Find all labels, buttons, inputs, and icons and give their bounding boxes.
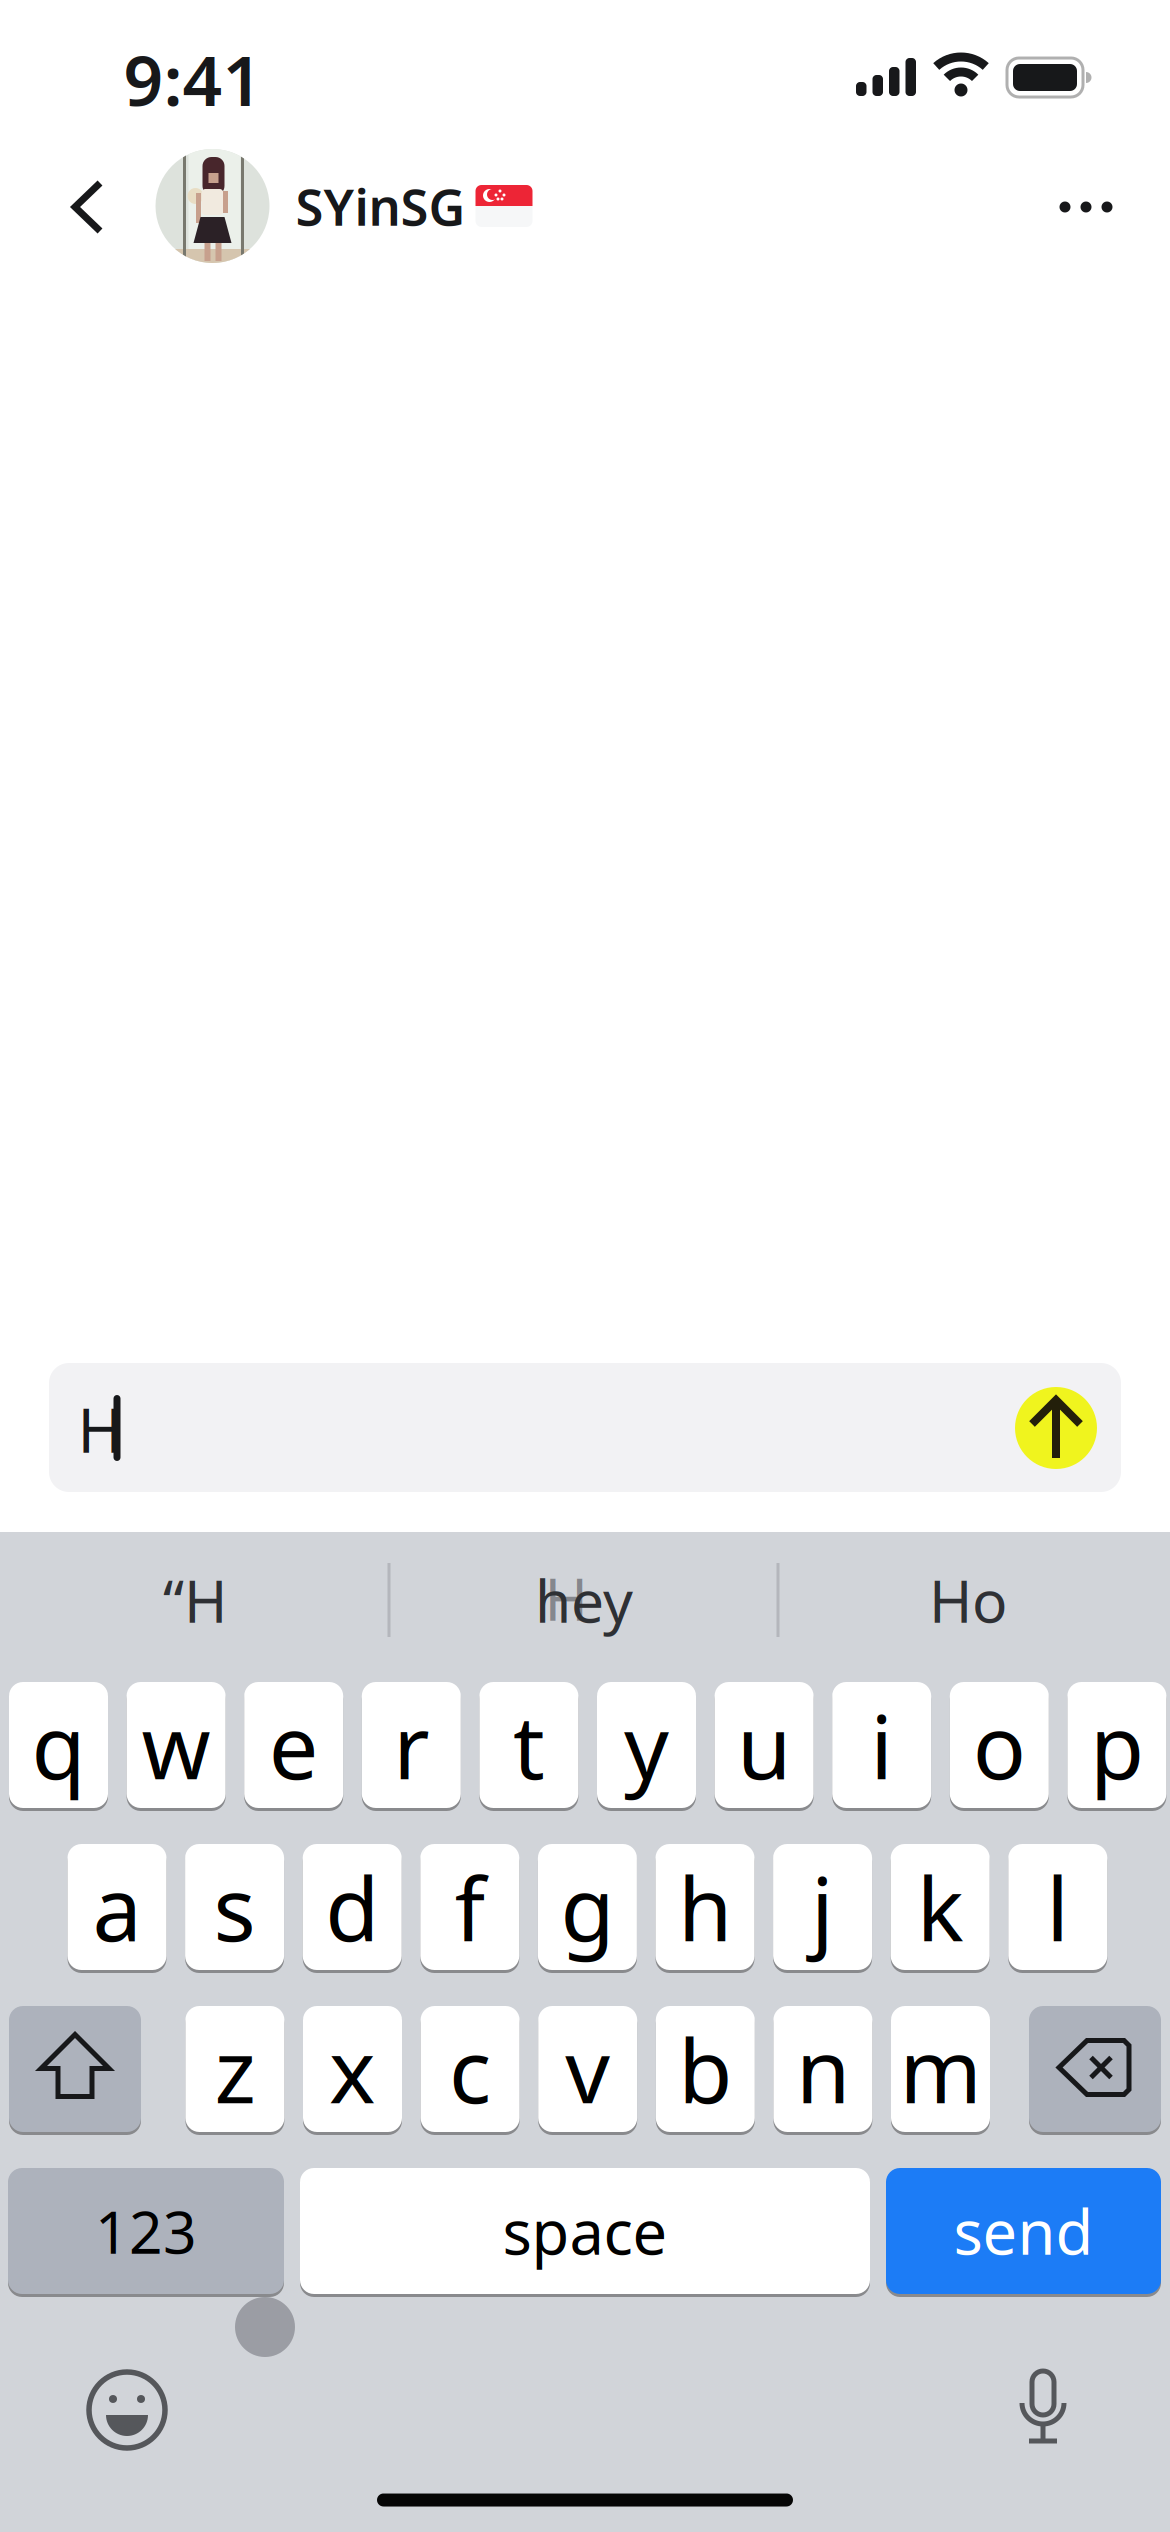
staticText: 123 xyxy=(95,2192,197,2270)
staticText: w xyxy=(142,1687,211,1803)
staticText: r xyxy=(393,1687,429,1803)
button[interactable]: x xyxy=(303,2004,402,2133)
button[interactable]: SYinSG xyxy=(155,149,532,263)
button[interactable]: b xyxy=(656,2004,755,2133)
staticText: f xyxy=(455,1849,485,1965)
staticText: space xyxy=(502,2190,667,2272)
staticText: hey xyxy=(535,1561,633,1639)
button[interactable]: g xyxy=(538,1842,637,1971)
button[interactable]: Shift xyxy=(9,2004,141,2133)
button[interactable]: i xyxy=(832,1680,931,1809)
button[interactable]: Send xyxy=(1015,1387,1097,1469)
button[interactable]: n xyxy=(773,2004,872,2133)
staticText: p xyxy=(1090,1687,1144,1803)
button[interactable]: k xyxy=(891,1842,990,1971)
staticText: z xyxy=(214,2011,255,2127)
staticText: y xyxy=(624,1687,669,1803)
staticText: g xyxy=(560,1849,614,1965)
button[interactable]: Emoji xyxy=(82,2365,172,2455)
button[interactable]: send xyxy=(886,2166,1161,2295)
staticText: k xyxy=(917,1849,964,1965)
staticText: H xyxy=(544,1559,587,1637)
button[interactable]: m xyxy=(891,2004,990,2133)
button[interactable]: s xyxy=(185,1842,284,1971)
button[interactable]: c xyxy=(421,2004,520,2133)
button[interactable]: hey xyxy=(394,1545,774,1655)
staticText: SYinSG xyxy=(295,172,465,240)
button[interactable]: r xyxy=(362,1680,461,1809)
button[interactable]: Dictation xyxy=(1003,2358,1083,2458)
button[interactable]: l xyxy=(1008,1842,1107,1971)
button[interactable]: Ho xyxy=(778,1545,1158,1655)
staticText: d xyxy=(325,1849,379,1965)
button[interactable]: j xyxy=(773,1842,872,1971)
staticText: s xyxy=(214,1849,256,1965)
staticText: n xyxy=(796,2011,850,2127)
staticText: h xyxy=(678,1849,732,1965)
staticText: m xyxy=(899,2011,981,2127)
button[interactable]: p xyxy=(1067,1680,1166,1809)
button[interactable]: z xyxy=(185,2004,284,2133)
button[interactable]: d xyxy=(303,1842,402,1971)
button[interactable]: t xyxy=(479,1680,578,1809)
button[interactable]: u xyxy=(715,1680,814,1809)
staticText: o xyxy=(973,1687,1026,1803)
staticText: u xyxy=(737,1687,791,1803)
button[interactable]: v xyxy=(538,2004,637,2133)
staticText: “H xyxy=(163,1561,227,1639)
staticText: e xyxy=(269,1687,319,1803)
button[interactable]: h xyxy=(655,1842,754,1971)
staticText: t xyxy=(513,1687,545,1803)
staticText: Ho xyxy=(929,1561,1007,1639)
staticText: a xyxy=(92,1849,141,1965)
button[interactable]: “H xyxy=(5,1545,385,1655)
button[interactable]: More options xyxy=(1041,177,1131,237)
button[interactable]: Back xyxy=(48,175,128,239)
button[interactable]: space xyxy=(300,2166,870,2295)
staticText: x xyxy=(329,2011,376,2127)
staticText: i xyxy=(870,1687,893,1803)
button[interactable]: w xyxy=(127,1680,226,1809)
button[interactable]: e xyxy=(244,1680,343,1809)
button[interactable]: q xyxy=(9,1680,108,1809)
staticText: send xyxy=(953,2190,1093,2272)
button[interactable]: 123 xyxy=(8,2166,284,2295)
button[interactable]: a xyxy=(67,1842,166,1971)
staticText: 9:41 xyxy=(123,33,262,125)
staticText: c xyxy=(449,2011,491,2127)
button[interactable]: o xyxy=(950,1680,1049,1809)
staticText: q xyxy=(31,1687,85,1803)
button[interactable]: y xyxy=(597,1680,696,1809)
button[interactable]: f xyxy=(420,1842,519,1971)
button[interactable]: Delete xyxy=(1029,2004,1161,2133)
staticText: b xyxy=(678,2011,732,2127)
staticText: j xyxy=(811,1849,834,1965)
staticText: v xyxy=(565,2011,610,2127)
staticText: l xyxy=(1046,1849,1069,1965)
staticText: H xyxy=(77,1388,122,1470)
